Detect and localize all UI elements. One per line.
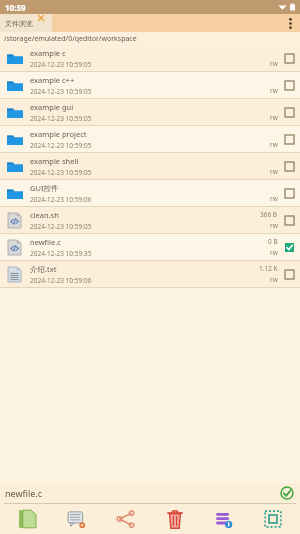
button[interactable]: example shell bbox=[0, 153, 300, 180]
staticText: rw bbox=[270, 248, 278, 257]
staticText: example shell bbox=[30, 156, 79, 166]
staticText: rw bbox=[270, 86, 278, 95]
button[interactable]: Rename bbox=[54, 504, 98, 534]
button[interactable]: Select example gui bbox=[283, 106, 295, 118]
staticText: GUI控件 bbox=[30, 183, 59, 193]
staticText: example c++ bbox=[30, 75, 75, 85]
staticText: 0 B bbox=[268, 237, 278, 246]
button[interactable]: Select all bbox=[251, 504, 295, 534]
button[interactable]: example c++ bbox=[0, 72, 300, 99]
button[interactable]: clean.sh bbox=[0, 207, 300, 234]
staticText: newfile.c bbox=[5, 487, 43, 499]
staticText: 2024-12-23 10:59:05 bbox=[30, 87, 92, 96]
button[interactable]: More options bbox=[280, 14, 300, 32]
button[interactable]: Select clean.sh bbox=[283, 214, 295, 226]
staticText: clean.sh bbox=[30, 210, 59, 220]
staticText: example c bbox=[30, 48, 66, 58]
staticText: 1.12 K bbox=[259, 264, 278, 273]
button[interactable]: Select example c bbox=[283, 52, 295, 64]
button[interactable]: example c bbox=[0, 45, 300, 72]
button[interactable]: Share bbox=[103, 504, 147, 534]
staticText: rw bbox=[270, 194, 278, 203]
button[interactable]: example gui bbox=[0, 99, 300, 126]
staticText: rw bbox=[270, 59, 278, 68]
staticText: 2024-12-23 10:59:05 bbox=[30, 141, 92, 150]
staticText: rw bbox=[270, 275, 278, 284]
staticText: 2024-12-23 10:59:35 bbox=[30, 249, 92, 258]
button[interactable]: Select example shell bbox=[283, 160, 295, 172]
staticText: 2024-12-23 10:59:05 bbox=[30, 114, 92, 123]
button[interactable]: newfile.c bbox=[0, 234, 300, 261]
staticText: rw bbox=[270, 167, 278, 176]
staticText: 2024-12-23 10:59:05 bbox=[30, 60, 92, 69]
button[interactable]: Confirm bbox=[279, 485, 295, 501]
staticText: 介绍.txt bbox=[30, 264, 57, 274]
staticText: rw bbox=[270, 221, 278, 230]
button[interactable]: 文件浏览 bbox=[0, 14, 52, 32]
button[interactable]: Copy bbox=[5, 504, 49, 534]
button[interactable]: Select example project bbox=[283, 133, 295, 145]
staticText: 文件浏览 bbox=[5, 19, 33, 28]
staticText: 10:59 bbox=[5, 2, 26, 13]
staticText: 2024-12-23 10:59:06 bbox=[30, 195, 92, 204]
staticText: example project bbox=[30, 129, 87, 139]
button[interactable]: Select example c++ bbox=[283, 79, 295, 91]
staticText: rw bbox=[270, 113, 278, 122]
staticText: 366 B bbox=[260, 210, 278, 219]
staticText: 2024-12-23 10:59:05 bbox=[30, 168, 92, 177]
staticText: newfile.c bbox=[30, 237, 61, 247]
staticText: 2024-12-23 10:59:05 bbox=[30, 222, 92, 231]
button[interactable]: 介绍.txt bbox=[0, 261, 300, 288]
button[interactable]: GUI控件 bbox=[0, 180, 300, 207]
staticText: 2024-12-23 10:59:06 bbox=[30, 276, 92, 285]
button[interactable]: Select newfile.c bbox=[283, 241, 295, 253]
staticText: rw bbox=[270, 140, 278, 149]
staticText: /storage/emulated/0/qeditor/workspace bbox=[4, 34, 137, 44]
button[interactable]: Select 介绍.txt bbox=[283, 268, 295, 280]
button[interactable]: Select GUI控件 bbox=[283, 187, 295, 199]
staticText: example gui bbox=[30, 102, 74, 112]
button[interactable]: Delete bbox=[153, 504, 197, 534]
button[interactable]: example project bbox=[0, 126, 300, 153]
button[interactable]: Properties bbox=[202, 504, 246, 534]
